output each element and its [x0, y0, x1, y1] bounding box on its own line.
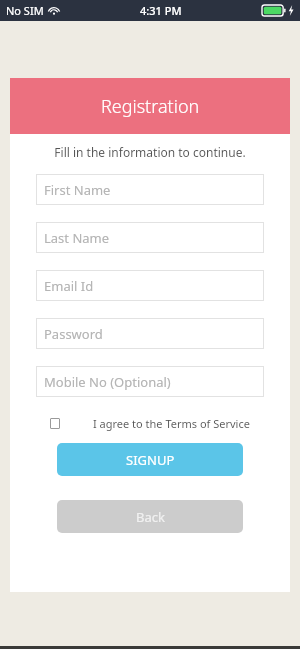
button[interactable]: SIGNUP: [57, 443, 243, 476]
button[interactable]: Password: [36, 318, 264, 349]
staticText: Registration: [101, 94, 200, 119]
staticText: 4:31 PM: [140, 3, 182, 18]
staticText: Back: [136, 508, 165, 526]
button[interactable]: First Name: [36, 174, 264, 205]
other: Wi-Fi: [48, 5, 60, 17]
button[interactable]: Email Id: [36, 270, 264, 301]
staticText: Last Name: [44, 229, 110, 247]
button[interactable]: Mobile No (Optional): [36, 366, 264, 397]
button[interactable]: I agree to the Terms of Service: [10, 416, 290, 431]
staticText: SIGNUP: [126, 451, 175, 469]
staticText: Mobile No (Optional): [44, 373, 171, 391]
button[interactable]: Last Name: [36, 222, 264, 253]
staticText: Password: [44, 325, 103, 343]
staticText: Email Id: [44, 277, 94, 295]
staticText: First Name: [44, 181, 111, 199]
button[interactable]: Back: [57, 500, 243, 533]
staticText: No SIM: [6, 3, 44, 18]
staticText: Fill in the information to continue.: [10, 144, 290, 160]
staticText: I agree to the Terms of Service: [93, 416, 250, 431]
